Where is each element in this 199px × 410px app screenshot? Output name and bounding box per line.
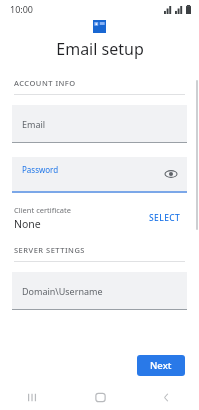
staticText: Email	[22, 118, 46, 130]
button[interactable]: Home	[67, 384, 133, 410]
staticText: ACCOUNT INFO	[14, 78, 76, 88]
staticText: Client certificate	[14, 205, 71, 215]
button[interactable]: Email	[12, 105, 187, 143]
button[interactable]: Next	[137, 355, 185, 376]
button[interactable]: SELECT	[145, 208, 185, 228]
staticText: Password	[22, 164, 59, 175]
button[interactable]: Domain\Username	[12, 272, 187, 310]
staticText: SELECT	[149, 212, 181, 224]
button[interactable]: Show password	[163, 166, 179, 182]
staticText: Domain\Username	[22, 285, 103, 297]
button[interactable]: Back	[133, 384, 199, 410]
staticText: Email setup	[56, 38, 144, 60]
button[interactable]: Client certificate	[14, 205, 185, 231]
button[interactable]: Recents	[0, 384, 67, 410]
staticText: None	[14, 217, 41, 231]
staticText: SERVER SETTINGS	[14, 245, 85, 255]
button[interactable]: Password	[12, 157, 187, 193]
staticText: 10:00	[10, 3, 34, 15]
staticText: Next	[150, 359, 172, 372]
